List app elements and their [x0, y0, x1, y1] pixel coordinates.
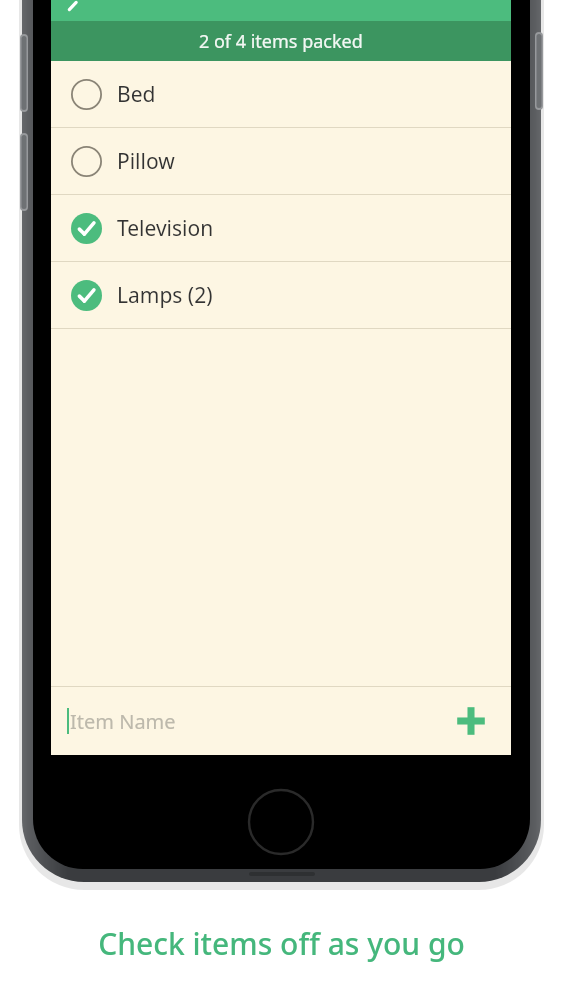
staticText: Item Name [70, 708, 176, 735]
staticText: Lamps (2) [117, 281, 213, 310]
button[interactable]: Television [51, 195, 511, 261]
staticText: Pillow [117, 147, 175, 176]
button[interactable]: Bed [51, 61, 511, 127]
button[interactable]: Item Name [51, 687, 431, 755]
button[interactable]: Add item [431, 687, 511, 755]
staticText: 2 of 4 items packed [199, 29, 363, 54]
staticText: Bed [117, 80, 156, 109]
staticText: Check items off as you go [98, 923, 465, 964]
button[interactable]: Pillow [51, 128, 511, 194]
staticText: Television [117, 214, 214, 243]
button[interactable]: Lamps (2) [51, 262, 511, 328]
button[interactable]: Back [65, 2, 83, 20]
